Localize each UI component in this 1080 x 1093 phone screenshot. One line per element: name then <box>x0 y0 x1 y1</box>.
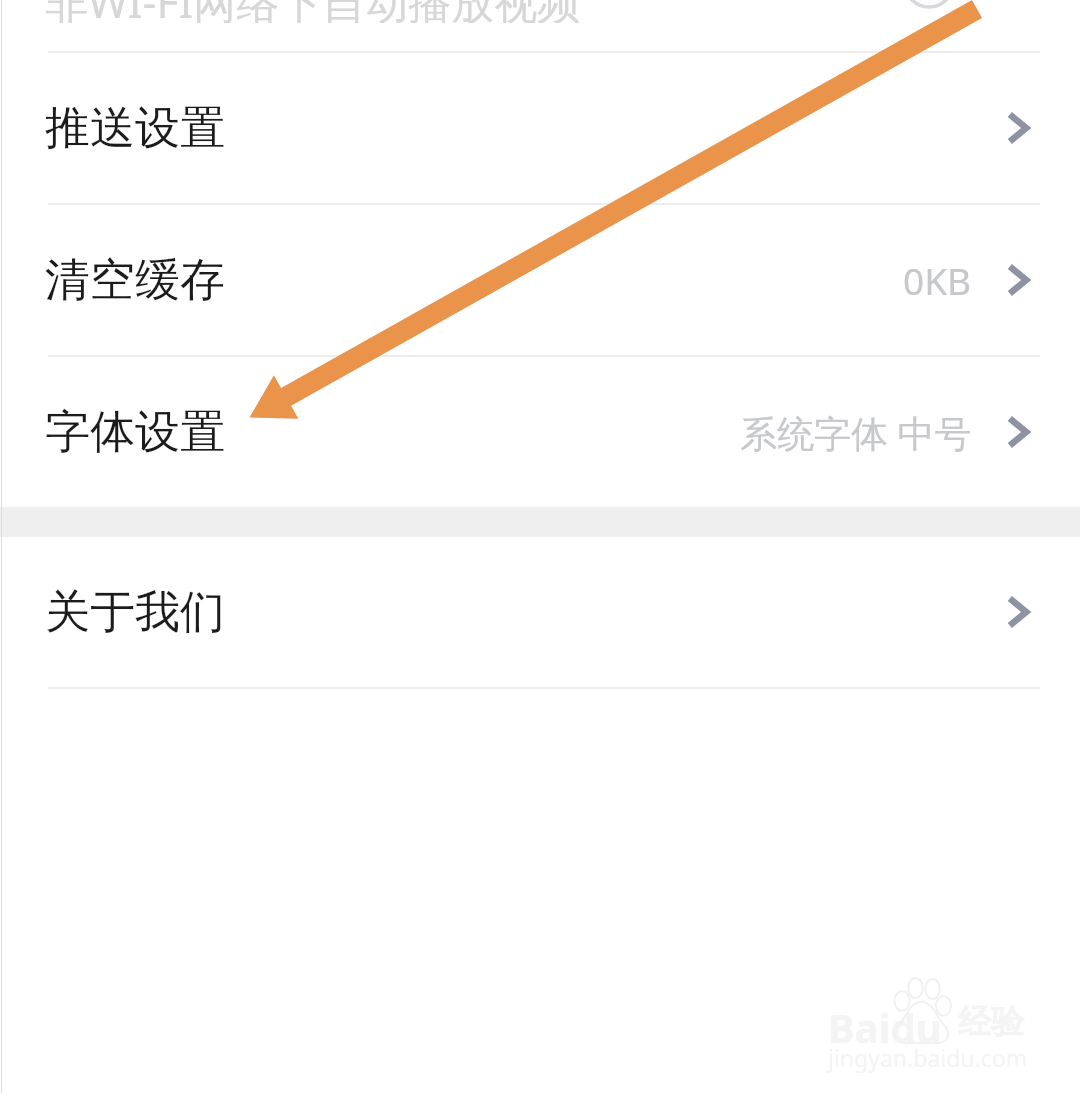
staticText: 经验 <box>958 1001 1024 1043</box>
button[interactable]: Auto-play video toggle <box>880 0 980 7</box>
button[interactable]: 非WI-FI网络下自动播放视频 <box>0 0 1080 51</box>
staticText: Baidu <box>828 1000 942 1054</box>
button[interactable]: 字体设置 <box>0 357 1080 507</box>
button[interactable]: 推送设置 <box>0 53 1080 203</box>
staticText: 非WI-FI网络下自动播放视频 <box>45 0 581 23</box>
button[interactable]: 关于我们 <box>0 537 1080 687</box>
staticText: jingyan.baidu.com <box>828 1042 1028 1073</box>
staticText: 字体设置 <box>45 404 225 461</box>
staticText: 关于我们 <box>45 584 225 641</box>
button[interactable]: 清空缓存 <box>0 205 1080 355</box>
staticText: 0KB <box>903 255 972 305</box>
staticText: 清空缓存 <box>45 252 225 309</box>
staticText: 推送设置 <box>45 100 225 157</box>
staticText: 系统字体 中号 <box>740 407 972 458</box>
